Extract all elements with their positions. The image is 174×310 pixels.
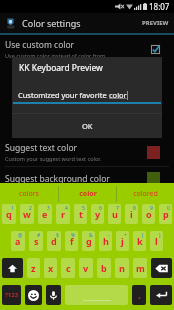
staticText: u <box>112 208 118 220</box>
button[interactable]: g <box>82 231 95 251</box>
staticText: p <box>163 208 169 220</box>
staticText: g <box>86 235 92 247</box>
button[interactable]: o <box>142 204 155 224</box>
button[interactable]: y <box>91 204 104 224</box>
button[interactable]: . <box>132 285 146 305</box>
staticText: 4 <box>65 205 68 212</box>
button[interactable]: Voice input <box>46 285 61 305</box>
staticText: . <box>138 288 141 302</box>
staticText: h <box>103 235 109 247</box>
staticText: Suggest text color <box>5 142 78 154</box>
staticText: t <box>79 208 83 220</box>
staticText: o <box>146 208 152 220</box>
button[interactable]: Space <box>65 285 128 305</box>
staticText: ?123 <box>5 291 19 299</box>
staticText: Color settings <box>22 17 81 29</box>
staticText: $ <box>56 232 59 239</box>
staticText: % <box>71 232 76 239</box>
button[interactable]: Suggest background color <box>0 170 174 187</box>
staticText: Suggest background color <box>5 173 110 185</box>
staticText: c <box>66 262 71 274</box>
button[interactable]: b <box>97 258 111 278</box>
staticText: colors <box>19 189 39 199</box>
button[interactable]: n <box>115 258 129 278</box>
staticText: Customized your favorite <box>18 90 109 100</box>
staticText: z <box>31 262 36 274</box>
staticText: j <box>121 235 124 247</box>
staticText: s <box>34 235 39 247</box>
staticText: 8 <box>133 205 136 212</box>
button[interactable]: OK <box>12 114 162 138</box>
staticText: 5 <box>82 205 85 212</box>
staticText: OK <box>82 121 93 131</box>
button[interactable]: App icon <box>3 16 18 31</box>
staticText: color <box>109 90 127 100</box>
staticText: m <box>136 262 145 274</box>
staticText: f <box>70 235 74 247</box>
button[interactable]: u <box>108 204 121 224</box>
button[interactable]: p <box>159 204 172 224</box>
button[interactable]: s <box>29 231 43 251</box>
button[interactable]: z <box>27 258 40 278</box>
button[interactable]: w <box>20 204 34 224</box>
staticText: a <box>15 235 21 247</box>
button[interactable]: j <box>116 231 129 251</box>
button[interactable]: Suggest text color <box>0 140 174 164</box>
staticText: 2 <box>29 205 32 212</box>
staticText: colored <box>133 189 158 199</box>
button[interactable]: colored <box>117 183 174 204</box>
button[interactable]: Use custom color <box>0 37 174 61</box>
staticText: 6 <box>99 205 102 212</box>
button[interactable]: v <box>79 258 93 278</box>
staticText: b <box>101 262 107 274</box>
staticText: e <box>42 208 48 220</box>
staticText: k <box>137 235 143 247</box>
staticText: # <box>37 232 41 239</box>
button[interactable]: h <box>99 231 112 251</box>
staticText: & <box>89 232 93 239</box>
button[interactable]: d <box>47 231 61 251</box>
button[interactable]: i <box>125 204 138 224</box>
staticText: 9 <box>150 205 153 212</box>
button[interactable]: x <box>44 258 57 278</box>
button[interactable]: colors <box>0 183 58 204</box>
button[interactable]: f <box>65 231 78 251</box>
staticText: + <box>124 232 127 239</box>
staticText: y <box>95 208 101 220</box>
button[interactable]: Enter <box>150 285 172 305</box>
staticText: 18:07 <box>149 1 170 12</box>
staticText: r <box>61 208 66 220</box>
button[interactable]: c <box>61 258 75 278</box>
staticText: w <box>23 208 31 220</box>
button[interactable]: ?123 <box>2 285 21 305</box>
staticText: Use custom color <box>5 39 75 51</box>
staticText: x <box>48 262 54 274</box>
button[interactable]: Emoji <box>25 285 42 305</box>
staticText: i <box>130 208 133 220</box>
button[interactable]: t <box>74 204 87 224</box>
staticText: 0 <box>167 205 170 212</box>
button[interactable]: r <box>56 204 70 224</box>
button[interactable]: q <box>2 204 16 224</box>
staticText: PREVIEW <box>142 19 169 27</box>
staticText: Use custom color instead of color from <box>5 52 106 59</box>
staticText: - <box>108 232 110 239</box>
staticText: color <box>79 189 97 199</box>
button[interactable]: Delete <box>151 258 172 278</box>
staticText: 7 <box>116 205 119 212</box>
staticText: KK Keyboard Preview <box>19 62 103 74</box>
staticText: ( <box>142 232 144 239</box>
button[interactable]: l <box>150 231 163 251</box>
staticText: Custom your suggest word text color. <box>5 155 102 162</box>
button[interactable]: m <box>133 258 147 278</box>
button[interactable]: PREVIEW <box>137 13 174 33</box>
staticText: d <box>51 235 57 247</box>
button[interactable]: e <box>38 204 52 224</box>
button[interactable]: a <box>11 231 25 251</box>
staticText: v <box>83 262 89 274</box>
button[interactable]: Shift <box>2 258 23 278</box>
staticText: q <box>6 208 12 220</box>
staticText: 1 <box>11 205 14 212</box>
button[interactable]: k <box>133 231 146 251</box>
button[interactable]: color <box>59 183 116 204</box>
